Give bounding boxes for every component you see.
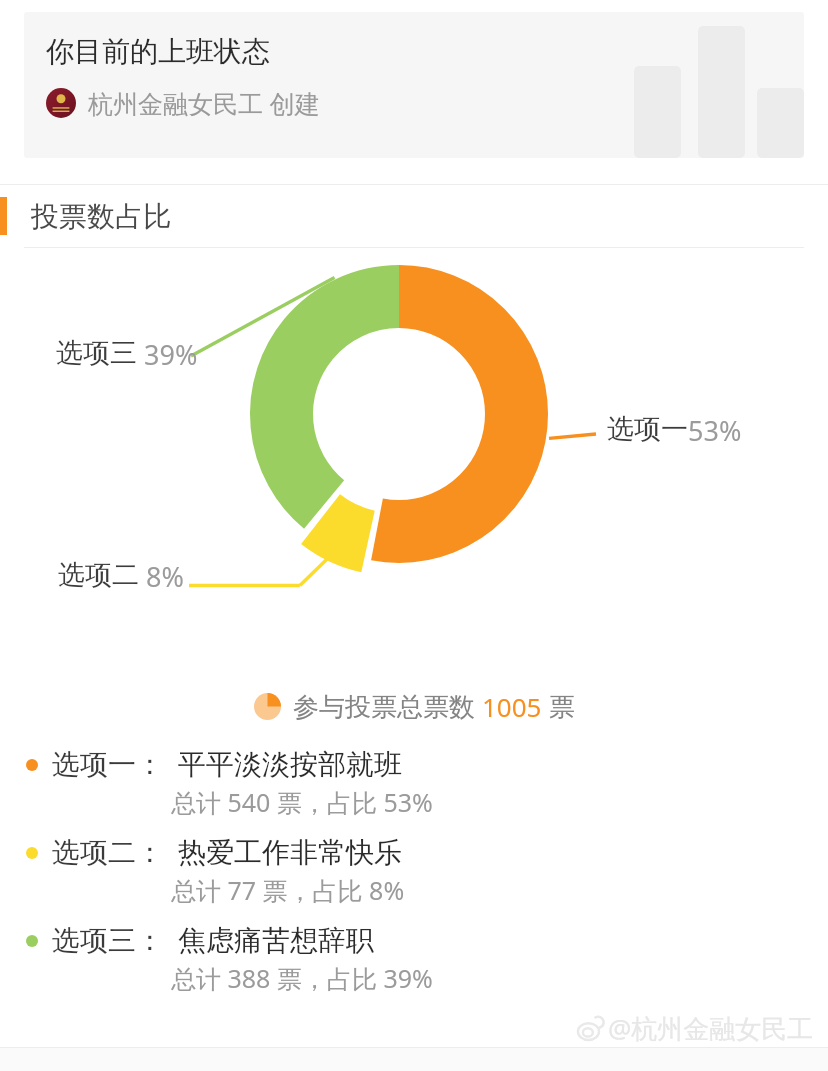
staticText: 杭州金融女民工 创建 [88, 86, 320, 120]
staticText: 总计 388 票，占比 39% [171, 961, 433, 995]
staticText: 你目前的上班状态 [46, 34, 270, 69]
staticText: 票 [542, 688, 575, 724]
staticText: 1005 [482, 689, 542, 724]
staticText: 选项三 [56, 336, 137, 370]
staticText: @杭州金融女民工 [608, 1010, 814, 1046]
button[interactable]: 选项一： [0, 740, 828, 828]
staticText: 选项一： [52, 747, 164, 782]
staticText: 选项二： [52, 835, 164, 870]
staticText: 53% [688, 412, 742, 449]
staticText: 热爱工作非常快乐 [178, 835, 402, 870]
staticText: 8% [139, 558, 184, 595]
staticText: 平平淡淡按部就班 [178, 747, 402, 782]
button[interactable]: 你目前的上班状态 [24, 12, 804, 158]
button[interactable]: 选项三： [0, 916, 828, 1004]
button[interactable]: 选项二： [0, 828, 828, 916]
staticText: 参与投票总票数 [293, 688, 482, 724]
staticText: 投票数占比 [31, 199, 171, 234]
staticText: 总计 77 票，占比 8% [171, 873, 405, 907]
staticText: 39% [137, 336, 198, 373]
other: Weibo [577, 1013, 608, 1044]
staticText: 选项三： [52, 923, 164, 958]
staticText: 选项二 [58, 558, 139, 592]
staticText: 总计 540 票，占比 53% [171, 785, 433, 819]
staticText: 选项一 [607, 412, 688, 446]
staticText: 焦虑痛苦想辞职 [178, 923, 374, 958]
other: Poll total [254, 693, 281, 720]
